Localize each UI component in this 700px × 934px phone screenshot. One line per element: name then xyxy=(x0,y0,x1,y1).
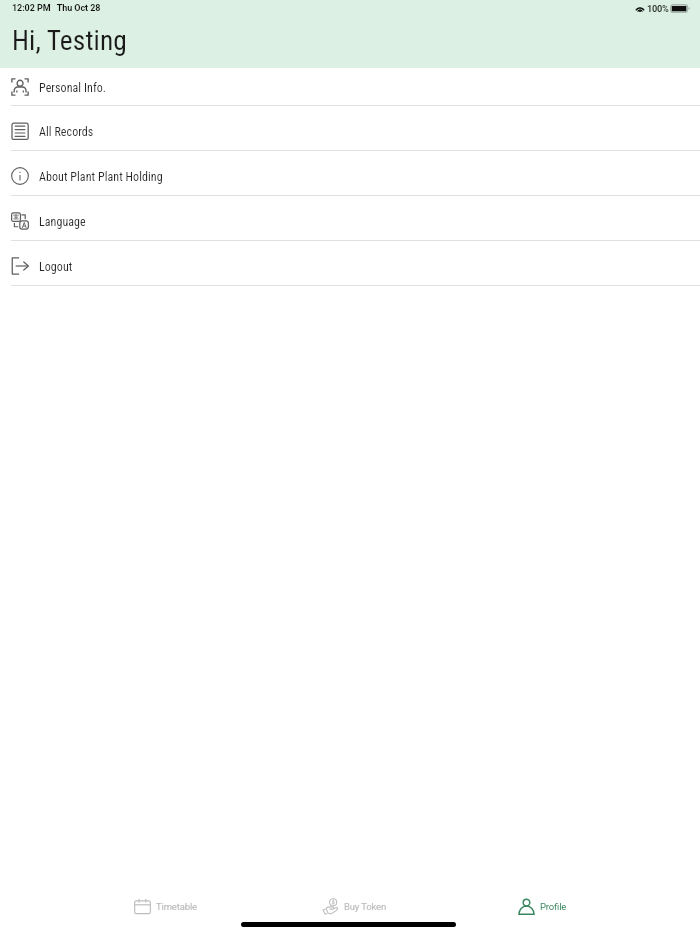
staticText: About Plant Plant Holding xyxy=(39,170,163,184)
button[interactable]: Buy Token xyxy=(260,895,448,917)
staticText: All Records xyxy=(39,125,94,139)
staticText: Logout xyxy=(39,260,73,274)
button[interactable]: Timetable xyxy=(71,895,260,917)
staticText: 100% xyxy=(647,3,669,14)
staticText: Buy Token xyxy=(344,901,387,912)
staticText: Hi, Testing xyxy=(12,25,127,57)
staticText: 12:02 PM Thu Oct 28 xyxy=(12,3,101,14)
staticText: Personal Info. xyxy=(39,81,107,95)
button[interactable]: About Plant Plant Holding xyxy=(0,151,700,196)
button[interactable]: Language xyxy=(0,196,700,241)
button[interactable]: Personal Info. xyxy=(0,68,700,106)
staticText: Profile xyxy=(540,901,567,912)
staticText: Language xyxy=(39,215,86,229)
button[interactable]: All Records xyxy=(0,106,700,151)
button[interactable]: Profile xyxy=(448,895,636,917)
staticText: Timetable xyxy=(156,901,197,912)
button[interactable]: Logout xyxy=(0,241,700,286)
